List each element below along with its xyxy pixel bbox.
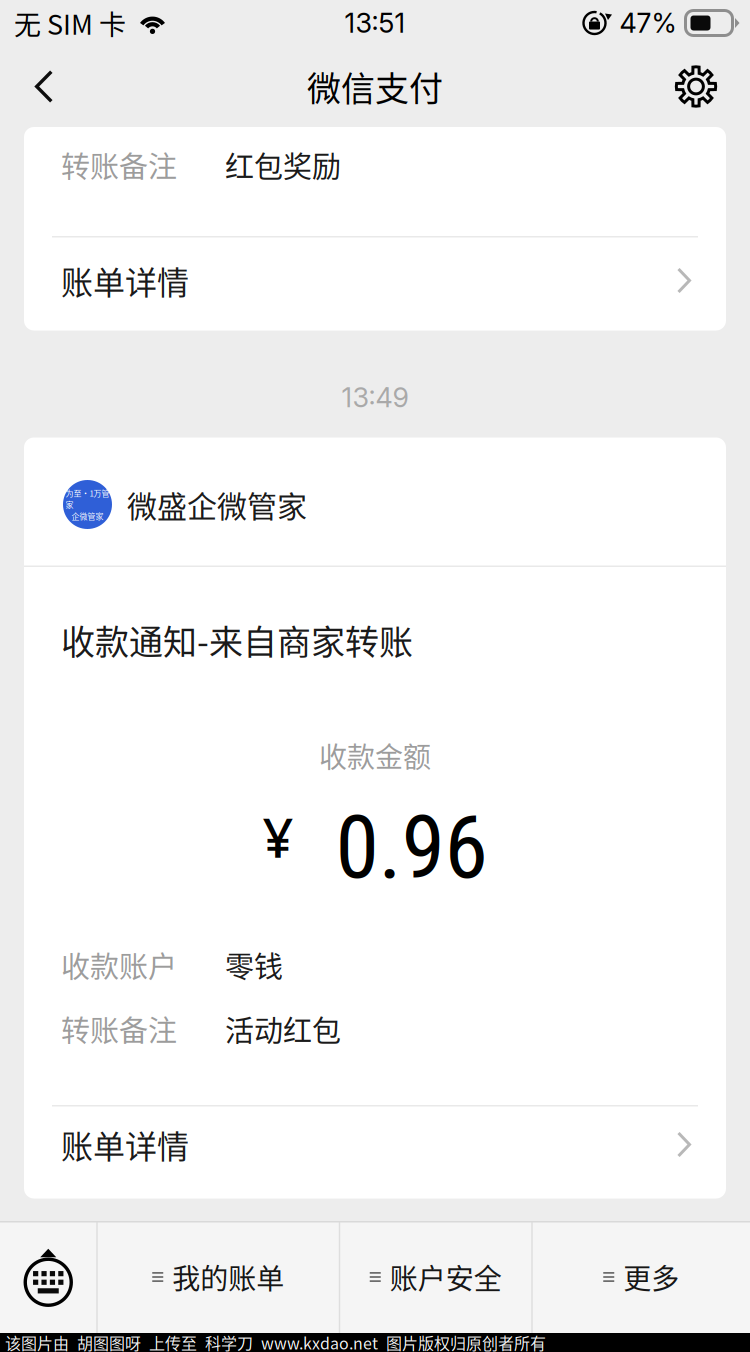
staticText: 账单详情: [61, 257, 189, 304]
button[interactable]: 账单详情: [24, 1106, 726, 1198]
staticText: 无 SIM 卡: [14, 3, 126, 43]
staticText: 账户安全: [390, 1257, 502, 1297]
staticText: 收款金额: [319, 735, 431, 776]
staticText: 为至·1万管家: [65, 487, 109, 510]
staticText: 47%: [619, 7, 676, 39]
staticText: 活动红包: [225, 1008, 341, 1050]
staticText: 更多: [623, 1257, 679, 1297]
staticText: 转账备注: [61, 144, 177, 186]
staticText: 该图片由 胡图图呀 上传至 科学刀 www.kxdao.net 图片版权归原创者…: [5, 1331, 546, 1352]
staticText: 转账备注: [61, 1008, 177, 1050]
staticText: 13:51: [344, 7, 405, 39]
staticText: 收款账户: [61, 944, 177, 986]
staticText: 收款通知-来自商家转账: [61, 615, 413, 665]
staticText: 零钱: [225, 944, 283, 986]
staticText: 红包奖励: [225, 144, 341, 186]
button[interactable]: Back: [6, 46, 82, 127]
staticText: ¥: [262, 800, 293, 873]
staticText: 0.96: [335, 796, 487, 899]
button[interactable]: 我的账单: [98, 1221, 339, 1333]
staticText: 微信支付: [307, 62, 443, 111]
staticText: 13:49: [341, 381, 408, 414]
staticText: 微盛企微管家: [127, 483, 307, 526]
button[interactable]: Settings: [656, 46, 736, 127]
staticText: 我的账单: [172, 1257, 284, 1297]
staticText: 企微管家: [71, 510, 103, 522]
staticText: 账单详情: [61, 1121, 189, 1168]
button[interactable]: Keyboard: [0, 1221, 96, 1333]
button[interactable]: 账单详情: [24, 237, 726, 330]
button[interactable]: 更多: [533, 1221, 750, 1333]
button[interactable]: 账户安全: [340, 1221, 531, 1333]
